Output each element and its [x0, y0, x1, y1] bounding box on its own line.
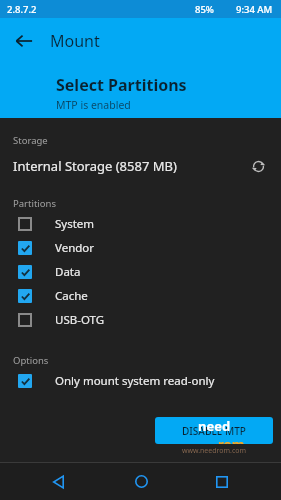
button[interactable]: DISABLE MTP: [155, 417, 273, 444]
button[interactable]: USB-OTG: [0, 308, 281, 332]
button[interactable]: Only mount system read-only: [0, 369, 281, 393]
staticText: Options: [13, 354, 49, 367]
staticText: Partitions: [13, 197, 56, 210]
button[interactable]: Internal Storage (8587 MB): [0, 153, 281, 179]
staticText: Mount: [50, 30, 100, 52]
staticText: 85%: [195, 3, 214, 16]
button[interactable]: Home: [119, 463, 163, 500]
button[interactable]: Recent apps: [200, 463, 244, 500]
staticText: Only mount system read-only: [55, 373, 215, 389]
staticText: rom: [218, 435, 245, 444]
button[interactable]: Data: [0, 260, 281, 284]
staticText: System: [55, 216, 95, 232]
staticText: USB-OTG: [55, 312, 105, 328]
button[interactable]: Refresh: [245, 153, 271, 179]
button[interactable]: Back: [37, 463, 81, 500]
staticText: 2.8.7.2: [7, 3, 37, 16]
button[interactable]: System: [0, 212, 281, 236]
button[interactable]: Back: [6, 23, 42, 59]
staticText: Select Partitions: [56, 74, 187, 96]
button[interactable]: Vendor: [0, 236, 281, 260]
staticText: DISABLE MTP: [182, 424, 246, 438]
button[interactable]: Cache: [0, 284, 281, 308]
staticText: www.needrom.com: [155, 446, 273, 456]
staticText: Vendor: [55, 240, 95, 256]
staticText: 9:34 AM: [236, 3, 273, 16]
staticText: need: [198, 417, 231, 435]
staticText: Cache: [55, 288, 88, 304]
staticText: Storage: [13, 134, 48, 147]
staticText: MTP is enabled: [56, 98, 131, 112]
staticText: Internal Storage (8587 MB): [13, 157, 177, 175]
staticText: Data: [55, 264, 81, 280]
